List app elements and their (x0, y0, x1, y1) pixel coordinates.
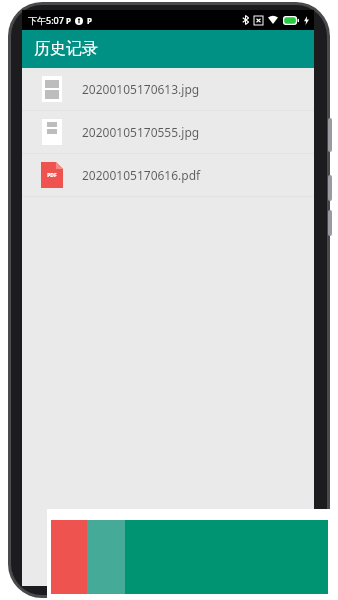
button[interactable]: 20200105170555.jpg (22, 111, 314, 153)
staticText: 历史记录 (34, 39, 98, 59)
staticText: P (66, 15, 71, 26)
button[interactable]: 历史记录 (22, 30, 314, 68)
staticText: 20200105170613.jpg (82, 81, 200, 97)
button[interactable]: 20200105170613.jpg (22, 68, 314, 110)
staticText: 20200105170555.jpg (82, 124, 200, 140)
button[interactable]: PDF (22, 154, 314, 196)
staticText: 20200105170616.pdf (82, 167, 201, 183)
staticText: P (87, 15, 92, 26)
button[interactable]: Preview banner (47, 509, 338, 600)
staticText: PDF (47, 172, 57, 179)
staticText: 下午5:07 (28, 14, 64, 26)
